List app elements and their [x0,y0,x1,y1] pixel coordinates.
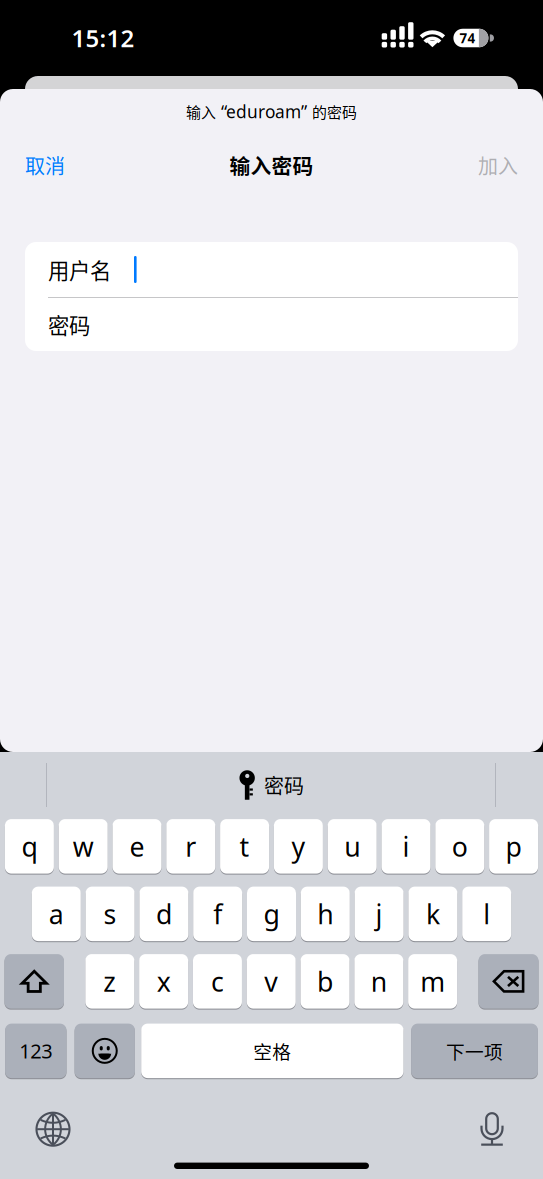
staticText: c [211,964,224,999]
staticText: j [376,896,383,931]
button[interactable]: z [85,953,134,1010]
button[interactable]: 密码 [215,760,328,810]
button[interactable]: j [355,885,404,942]
staticText: 输入 [186,101,216,122]
staticText: 下一项 [446,1037,503,1064]
staticText: h [317,896,333,931]
button[interactable]: 加入 [464,140,543,190]
button[interactable]: e [112,818,161,875]
staticText: n [371,964,387,999]
button[interactable]: i [381,818,430,875]
button[interactable]: Delete [478,953,538,1010]
button[interactable]: f [193,885,242,942]
button[interactable]: y [274,818,323,875]
staticText: y [291,829,305,864]
button[interactable]: Emoji [75,1022,135,1079]
button[interactable]: p [489,818,538,875]
button[interactable]: 密码 [25,298,518,351]
button[interactable]: 取消 [0,140,79,190]
button[interactable]: s [86,885,135,942]
button[interactable]: a [32,885,81,942]
button[interactable]: 下一项 [411,1022,538,1079]
button[interactable]: u [328,818,377,875]
staticText: 密码 [48,309,90,340]
button[interactable]: Dictation [475,1111,509,1147]
staticText: p [506,829,522,864]
button[interactable]: d [139,885,188,942]
staticText: w [73,829,94,864]
staticText: 123 [19,1038,52,1064]
staticText: g [263,896,279,931]
staticText: v [264,964,278,999]
staticText: “eduroam” [216,100,312,123]
button[interactable]: n [354,953,403,1010]
staticText: e [129,829,144,864]
staticText: 74 [459,29,475,47]
button[interactable]: q [5,818,54,875]
button[interactable]: v [247,953,296,1010]
button[interactable]: k [408,885,457,942]
staticText: x [157,964,171,999]
staticText: a [49,896,64,931]
staticText: s [104,896,117,931]
button[interactable]: m [408,953,457,1010]
button[interactable]: l [462,885,511,942]
staticText: 用户名 [48,254,111,285]
staticText: 取消 [25,150,65,179]
staticText: o [452,829,468,864]
staticText: i [402,829,409,864]
staticText: t [240,829,250,864]
button[interactable]: Shift [4,953,64,1010]
button[interactable]: x [139,953,188,1010]
staticText: 加入 [478,150,518,179]
button[interactable]: c [193,953,242,1010]
button[interactable]: r [166,818,215,875]
staticText: d [156,896,172,931]
staticText: r [185,829,196,864]
button[interactable]: g [247,885,296,942]
staticText: 输入密码 [229,150,313,180]
button[interactable]: o [435,818,484,875]
staticText: 的密码 [312,101,357,122]
button[interactable]: w [59,818,108,875]
button[interactable]: 用户名 [25,242,518,297]
staticText: 空格 [253,1037,291,1064]
staticText: b [317,964,333,999]
button[interactable]: h [301,885,350,942]
button[interactable]: 123 [5,1022,66,1079]
button[interactable]: b [300,953,349,1010]
staticText: q [21,829,37,864]
staticText: l [483,896,490,931]
staticText: m [420,964,445,999]
staticText: u [344,829,360,864]
button[interactable]: t [220,818,269,875]
button[interactable]: Next keyboard [33,1109,73,1149]
staticText: 15:12 [71,22,134,54]
button[interactable]: 空格 [141,1022,403,1079]
staticText: 密码 [264,770,304,799]
staticText: f [213,896,222,931]
staticText: z [103,964,116,999]
staticText: k [426,896,440,931]
